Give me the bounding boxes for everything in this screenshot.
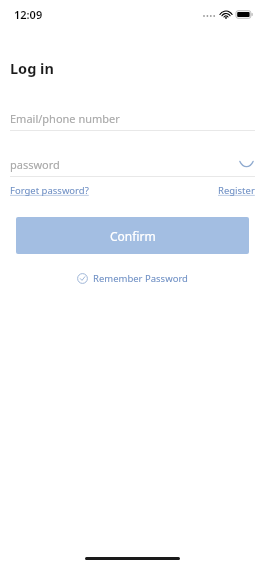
button[interactable]: Register — [218, 184, 255, 197]
staticText: 12:09 — [14, 7, 43, 22]
button[interactable]: Email/phone number — [0, 106, 265, 130]
staticText: Remember Password — [93, 272, 188, 285]
button[interactable]: Confirm — [16, 217, 249, 254]
button[interactable]: Remember Password — [73, 270, 192, 287]
staticText: Register — [218, 184, 255, 197]
staticText: Forget password? — [10, 184, 89, 197]
staticText: Email/phone number — [10, 111, 120, 126]
staticText: password — [10, 157, 60, 172]
button[interactable]: password — [0, 152, 265, 176]
staticText: Log in — [10, 58, 54, 78]
staticText: Confirm — [110, 228, 156, 244]
button[interactable]: Show password — [237, 155, 255, 173]
button[interactable]: Forget password? — [10, 184, 89, 197]
